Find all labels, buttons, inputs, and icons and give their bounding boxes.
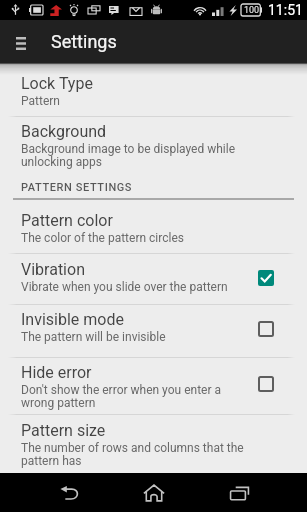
staticText: Vibration [21,260,85,279]
button[interactable]: Vibration [0,260,307,294]
button[interactable]: Recent apps [204,473,274,512]
button[interactable]: Pattern color [0,211,307,245]
staticText: Lock Type [21,74,93,93]
staticText: wrong pattern [21,396,96,410]
staticText: Background [21,122,107,141]
staticText: Background image to be displayed while [21,142,236,156]
staticText: The number of rows and columns that the [21,441,244,455]
staticText: Pattern size [21,421,106,440]
staticText: 11:51 [268,2,303,18]
staticText: PATTERN SETTINGS [21,181,133,194]
button[interactable]: Back [34,473,104,512]
button[interactable]: Unchecked [250,368,282,400]
staticText: Hide error [21,363,92,382]
button[interactable]: Open navigation menu [0,20,42,63]
button[interactable]: Checked [250,262,282,294]
staticText: 100 [244,5,260,16]
staticText: Pattern color [21,211,113,230]
button[interactable]: Lock Type [0,74,307,108]
button[interactable]: Home [119,473,189,512]
staticText: Invisible mode [21,310,124,329]
button[interactable]: Background [0,122,307,170]
staticText: unlocking apps [21,155,102,169]
staticText: Settings [51,31,117,52]
button[interactable]: Unchecked [250,313,282,345]
button[interactable]: Hide error [0,363,307,411]
button[interactable]: Pattern size [0,421,307,469]
staticText: Don't show the error when you enter a [21,383,221,397]
staticText: Vibrate when you slide over the pattern [21,280,228,294]
staticText: pattern has [21,454,82,468]
staticText: Pattern [21,94,60,108]
button[interactable]: Invisible mode [0,310,307,344]
staticText: The color of the pattern circles [21,231,184,245]
staticText: The pattern will be invisible [21,330,166,344]
